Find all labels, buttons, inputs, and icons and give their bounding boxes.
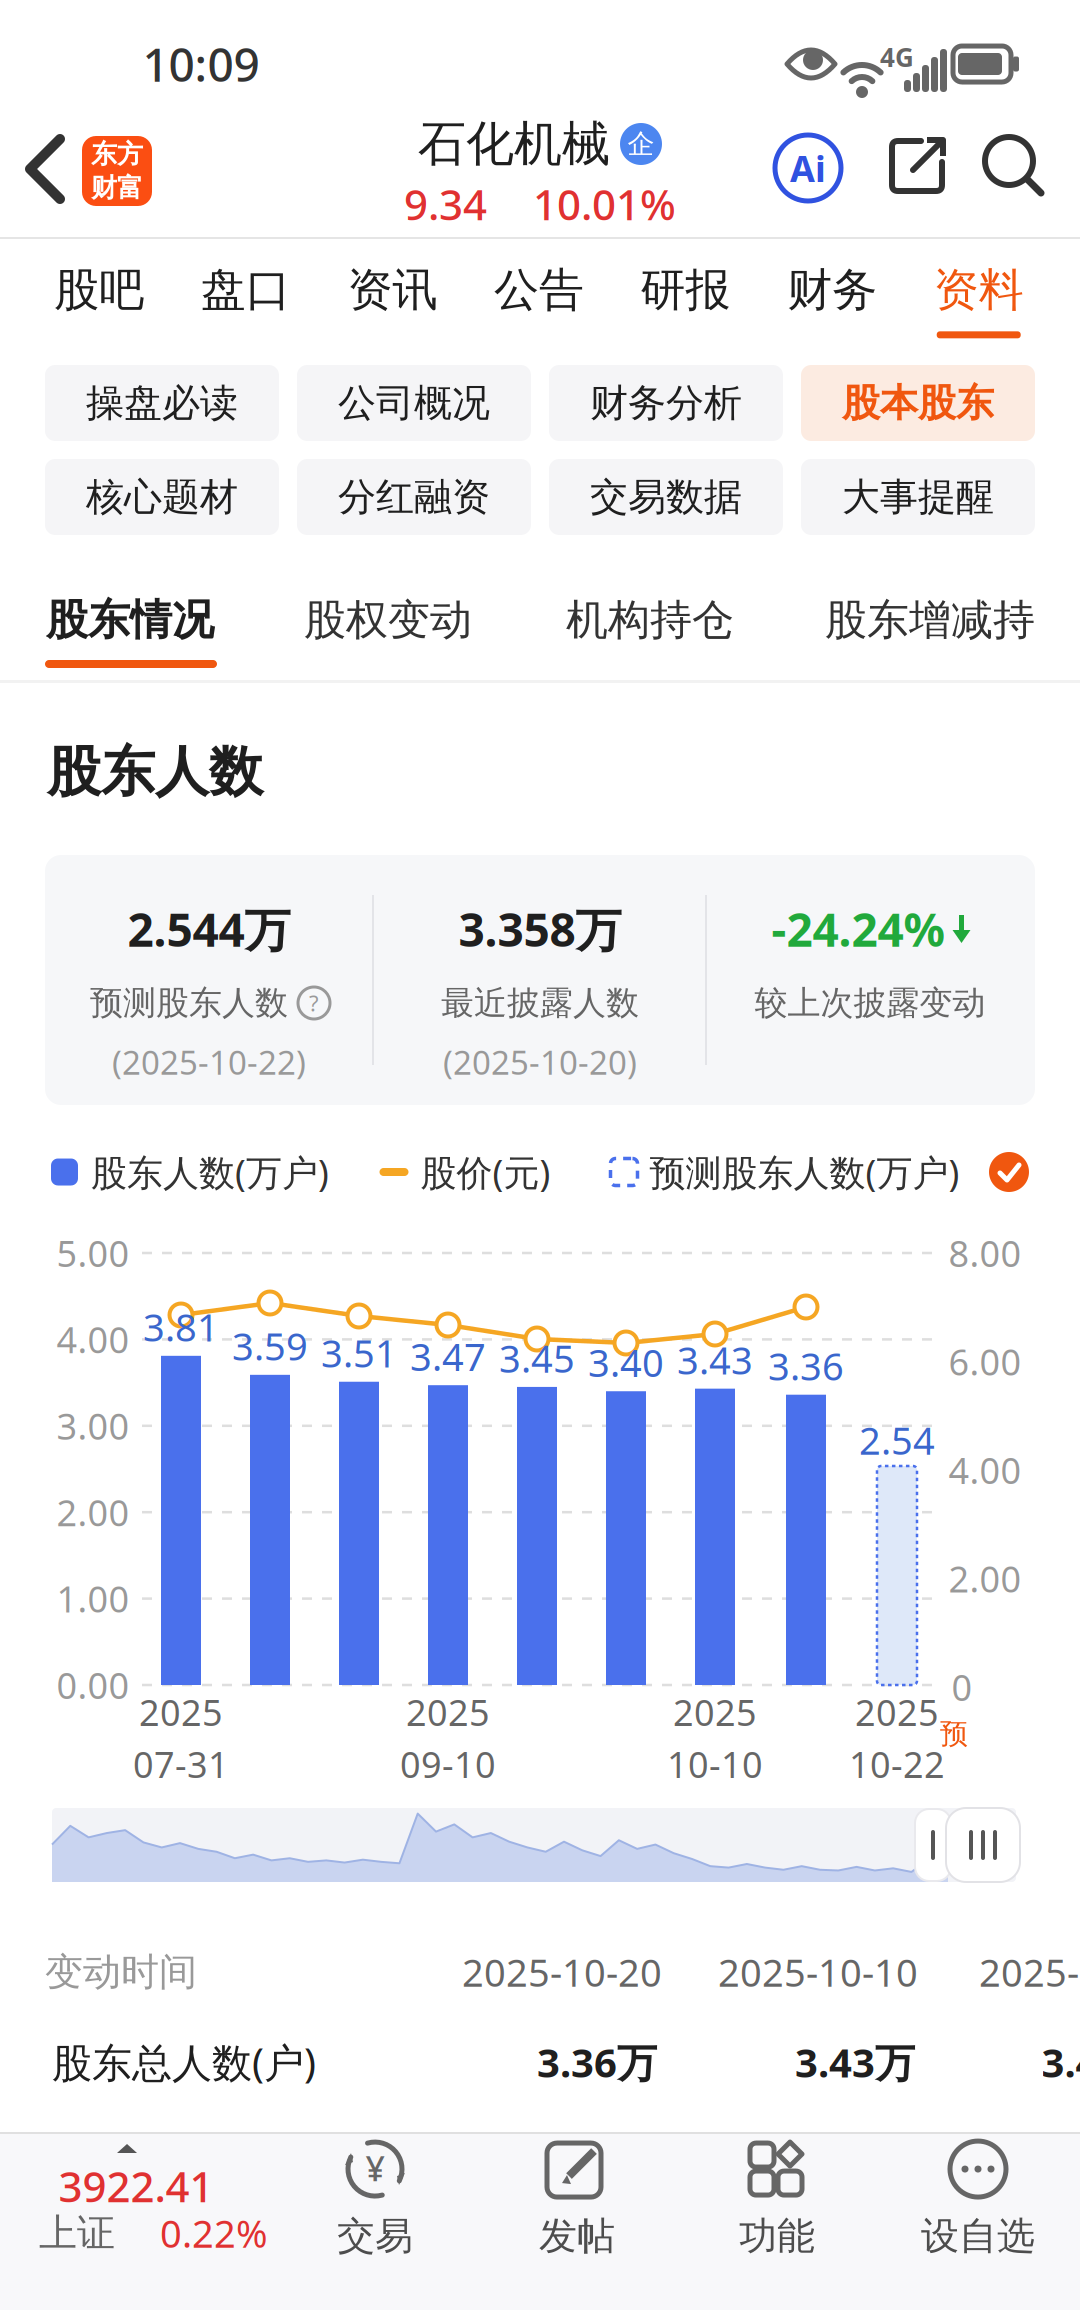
- staticText: 3.47: [410, 1330, 486, 1382]
- button[interactable]: 财务: [759, 262, 905, 338]
- staticText: 3.59: [232, 1320, 308, 1372]
- staticText: 财务分析: [590, 379, 742, 427]
- staticText: 3.358万: [458, 898, 621, 960]
- button[interactable]: 研报: [612, 262, 759, 338]
- staticText: 较上次披露变动: [754, 982, 985, 1024]
- button[interactable]: 公告: [466, 262, 612, 338]
- staticText: 09-10: [400, 1739, 496, 1788]
- staticText: 2.54: [859, 1414, 935, 1466]
- staticText: 9.34: [404, 175, 487, 233]
- staticText: 3.45: [499, 1332, 575, 1384]
- button[interactable]: 搜索: [981, 133, 1047, 199]
- staticText: 财富: [91, 171, 143, 204]
- staticText: 3.51: [321, 1327, 397, 1379]
- staticText: 股东人数: [47, 738, 263, 806]
- staticText: 分红融资: [338, 473, 490, 521]
- button[interactable]: 大事提醒: [801, 459, 1035, 535]
- staticText: 10.01%: [533, 175, 676, 233]
- button[interactable]: 添加自选: [921, 2140, 1035, 2260]
- staticText: (2025-10-22): [112, 1039, 306, 1084]
- staticText: 设自选: [921, 2212, 1035, 2260]
- button[interactable]: 收起图表: [985, 1148, 1033, 1196]
- button[interactable]: 股权变动: [278, 582, 498, 658]
- staticText: 4G: [880, 39, 914, 75]
- staticText: (2025-10-20): [443, 1039, 637, 1084]
- staticText: 预测股东人数: [90, 982, 288, 1024]
- button[interactable]: 核心题材: [45, 459, 279, 535]
- staticText: 6.00: [948, 1337, 1021, 1386]
- staticText: 交易: [337, 2212, 413, 2260]
- staticText: 2.00: [948, 1554, 1021, 1603]
- staticText: 0.00: [56, 1660, 129, 1709]
- button[interactable]: 股吧: [26, 262, 173, 338]
- staticText: 盘口: [201, 262, 291, 318]
- button[interactable]: 财务分析: [549, 365, 783, 441]
- button[interactable]: 机构持仓: [540, 582, 760, 658]
- staticText: 预: [940, 1716, 968, 1752]
- staticText: 发帖: [539, 2212, 615, 2260]
- button[interactable]: 发帖: [539, 2140, 615, 2260]
- staticText: 3.43: [677, 1334, 753, 1386]
- staticText: 3.00: [56, 1401, 129, 1450]
- button[interactable]: 股本股东: [801, 365, 1035, 441]
- button[interactable]: 股东情况: [20, 582, 240, 658]
- staticText: 变动时间: [45, 1948, 197, 1996]
- staticText: 2.544万: [127, 898, 290, 960]
- button[interactable]: 交易数据: [549, 459, 783, 535]
- button[interactable]: 功能: [739, 2140, 815, 2260]
- staticText: 1.00: [56, 1574, 129, 1623]
- button[interactable]: 资讯: [319, 262, 466, 338]
- staticText: 大事提醒: [842, 473, 994, 521]
- staticText: 5.00: [56, 1228, 129, 1277]
- staticText: 2025-10-20: [462, 1946, 662, 1998]
- staticText: 07-31: [133, 1739, 229, 1788]
- staticText: 交易数据: [590, 473, 742, 521]
- button[interactable]: 区间滑块: [915, 1808, 951, 1882]
- button[interactable]: 分红融资: [297, 459, 531, 535]
- staticText: 股本股东: [842, 379, 994, 427]
- staticText: 资料: [934, 262, 1024, 318]
- button[interactable]: 交易: [337, 2140, 413, 2260]
- staticText: Ai: [790, 143, 826, 192]
- staticText: 最近披露人数: [441, 982, 639, 1024]
- staticText: 上证: [39, 2209, 115, 2257]
- staticText: 2025: [406, 1687, 490, 1736]
- staticText: 0: [951, 1662, 972, 1711]
- staticText: 4.00: [56, 1315, 129, 1364]
- staticText: 股吧: [54, 262, 144, 318]
- button[interactable]: 资料: [905, 262, 1052, 338]
- staticText: 2025-1: [979, 1946, 1080, 1998]
- staticText: 2025: [139, 1687, 223, 1736]
- staticText: 股东总人数(户): [52, 2035, 316, 2089]
- staticText: 0.22%: [160, 2207, 268, 2259]
- button[interactable]: 3922.41: [0, 2142, 290, 2262]
- staticText: 3.81: [143, 1301, 219, 1353]
- staticText: 股权变动: [304, 593, 472, 646]
- button[interactable]: 返回: [14, 129, 76, 209]
- staticText: 10:09: [142, 33, 259, 95]
- staticText: 3.36万: [537, 2035, 657, 2089]
- button[interactable]: 股东增减持: [810, 582, 1050, 658]
- staticText: 预测股东人数(万户): [649, 1147, 959, 1196]
- staticText: 2025: [673, 1687, 757, 1736]
- staticText: 3.43万: [795, 2035, 915, 2089]
- button[interactable]: Ai问答: [772, 132, 844, 204]
- button[interactable]: 分享: [885, 134, 949, 198]
- staticText: 股价(元): [420, 1147, 550, 1196]
- staticText: 股东情况: [46, 593, 214, 646]
- staticText: 操盘必读: [86, 379, 238, 427]
- button[interactable]: 全部区间: [946, 1808, 1020, 1882]
- staticText: ¥: [365, 2145, 384, 2191]
- staticText: 东方: [91, 138, 143, 170]
- staticText: 2.00: [56, 1488, 129, 1537]
- staticText: 研报: [641, 262, 731, 318]
- staticText: 公司概况: [338, 379, 490, 427]
- button[interactable]: 盘口: [173, 262, 319, 338]
- staticText: ?: [309, 988, 319, 1018]
- staticText: 10-10: [667, 1739, 763, 1788]
- staticText: 企: [627, 127, 654, 161]
- staticText: 2025: [855, 1687, 939, 1736]
- button[interactable]: 操盘必读: [45, 365, 279, 441]
- button[interactable]: 公司概况: [297, 365, 531, 441]
- staticText: 10-22: [849, 1739, 945, 1788]
